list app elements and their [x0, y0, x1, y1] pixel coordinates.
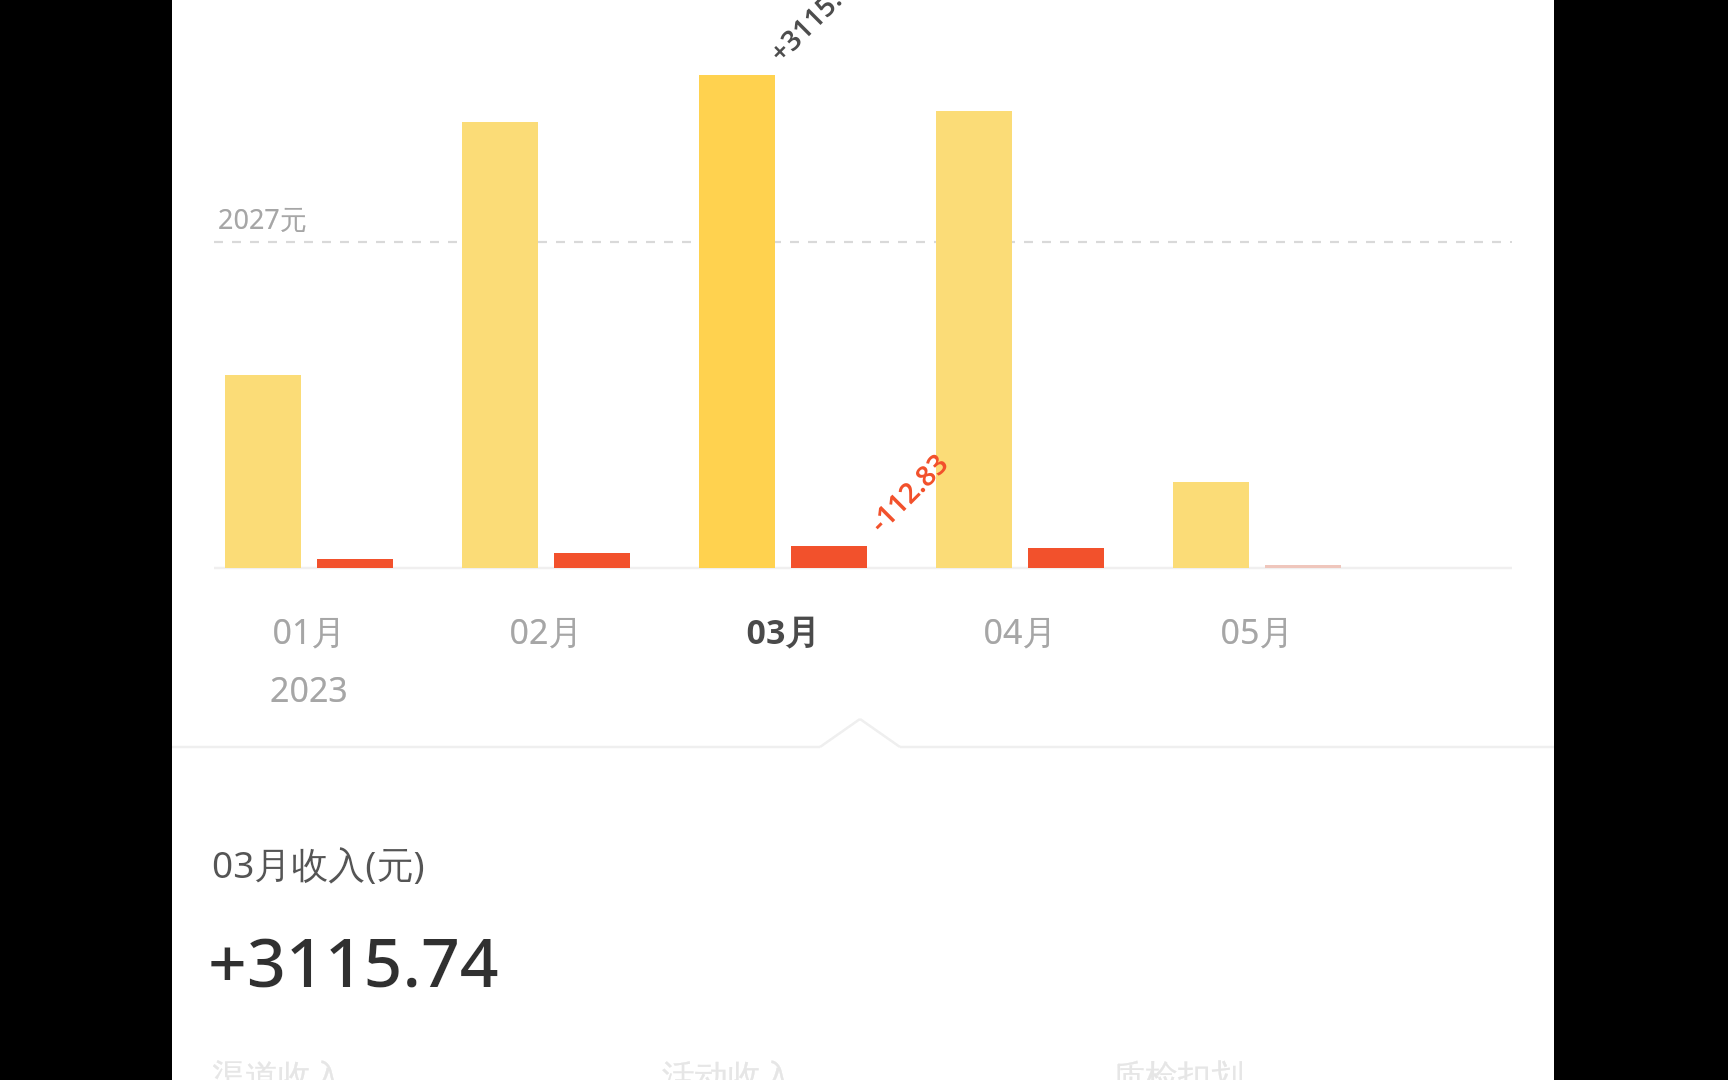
button[interactable]: 05月	[1152, 40, 1362, 700]
button[interactable]: 04月	[915, 40, 1125, 700]
button[interactable]: 02月	[441, 40, 651, 700]
button[interactable]: 01月	[204, 40, 414, 700]
button[interactable]: 03月	[678, 40, 888, 700]
